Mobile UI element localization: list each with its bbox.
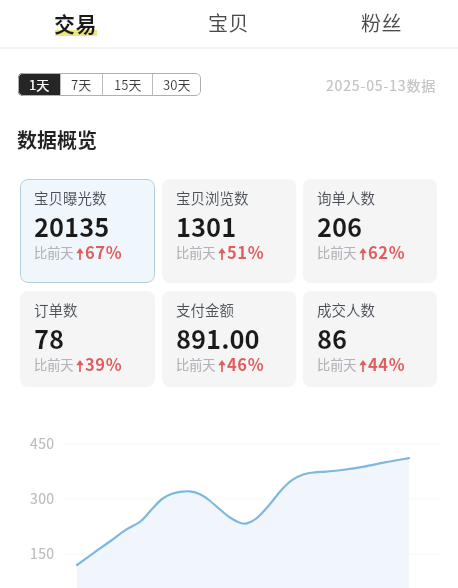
button[interactable]: 成交人数: [303, 291, 437, 387]
button[interactable]: 粉丝: [305, 0, 458, 49]
staticText: 1301: [176, 216, 237, 242]
staticText: 67%: [85, 245, 123, 262]
staticText: 51%: [227, 245, 265, 262]
staticText: 询单人数: [317, 192, 375, 207]
button[interactable]: 询单人数: [303, 179, 437, 283]
staticText: 比前天: [176, 359, 216, 373]
staticText: 150: [30, 543, 55, 563]
staticText: 宝贝浏览数: [176, 192, 249, 207]
staticText: 比前天: [317, 359, 357, 373]
staticText: 支付金额: [176, 304, 234, 319]
staticText: 粉丝: [361, 8, 403, 37]
staticText: 宝贝: [208, 8, 250, 37]
staticText: 44%: [368, 357, 406, 374]
button[interactable]: 宝贝: [152, 0, 305, 49]
staticText: 比前天: [317, 247, 357, 261]
staticText: 15天: [114, 75, 142, 94]
staticText: 成交人数: [317, 304, 375, 319]
button[interactable]: 交易: [0, 0, 152, 49]
staticText: 891.00: [176, 328, 260, 354]
staticText: 2025-05-13数据: [326, 75, 437, 95]
staticText: 39%: [85, 357, 123, 374]
staticText: 46%: [227, 357, 265, 374]
staticText: 7天: [71, 75, 92, 94]
staticText: 数据概览: [17, 125, 97, 154]
staticText: 1天: [29, 75, 50, 94]
staticText: 30天: [163, 75, 191, 94]
staticText: 比前天: [34, 247, 74, 261]
button[interactable]: 宝贝浏览数: [162, 179, 296, 283]
staticText: 宝贝曝光数: [34, 192, 107, 207]
button[interactable]: 宝贝曝光数: [20, 179, 155, 283]
staticText: 78: [34, 328, 65, 354]
staticText: 交易: [54, 8, 98, 38]
staticText: 62%: [368, 245, 406, 262]
staticText: 206: [317, 216, 363, 242]
button[interactable]: 30天: [153, 73, 201, 96]
staticText: 86: [317, 328, 348, 354]
staticText: 20135: [34, 216, 110, 242]
staticText: 订单数: [34, 304, 78, 319]
button[interactable]: 支付金额: [162, 291, 296, 387]
button[interactable]: 15天: [103, 73, 152, 96]
staticText: 450: [30, 433, 55, 453]
staticText: 比前天: [176, 247, 216, 261]
staticText: 300: [30, 488, 55, 508]
button[interactable]: 1天: [18, 73, 60, 96]
staticText: 比前天: [34, 359, 74, 373]
button[interactable]: 7天: [61, 73, 102, 96]
button[interactable]: 订单数: [20, 291, 155, 387]
